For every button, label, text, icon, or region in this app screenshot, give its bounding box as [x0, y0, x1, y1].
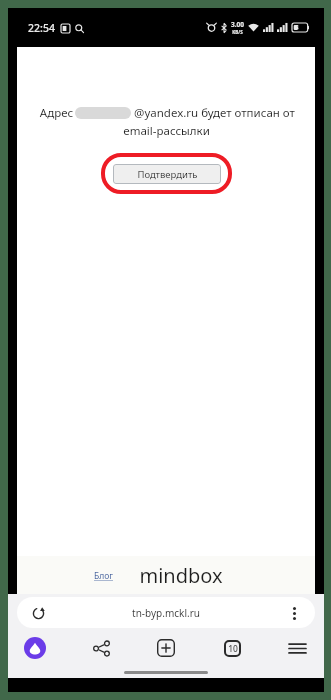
staticText: email-рассылки: [123, 123, 210, 139]
staticText: Блог: [94, 570, 113, 582]
staticText: @yandex.ru будет отписан от: [131, 105, 295, 121]
staticText: KB/S: [232, 29, 243, 35]
button[interactable]: New tab: [151, 633, 181, 663]
staticText: 22:54: [28, 21, 55, 35]
button[interactable]: Reload: [28, 603, 48, 623]
staticText: tn-byp.mckl.ru: [132, 606, 200, 620]
button[interactable]: Подтвердить: [113, 164, 221, 184]
staticText: 3.00: [231, 20, 244, 29]
button[interactable]: Блог: [90, 566, 117, 586]
staticText: 35: [297, 24, 304, 31]
staticText: Подтвердить: [137, 168, 198, 181]
staticText: mindbox: [139, 562, 223, 589]
staticText: 10: [228, 643, 238, 655]
staticText: Адрес: [38, 105, 75, 121]
button[interactable]: Tabs, 10 open: [217, 633, 247, 663]
button[interactable]: Share: [86, 633, 116, 663]
button[interactable]: Menu: [282, 633, 312, 663]
button[interactable]: More options: [284, 603, 304, 623]
button[interactable]: Reload: [17, 597, 315, 628]
button[interactable]: Alice assistant: [20, 633, 50, 663]
